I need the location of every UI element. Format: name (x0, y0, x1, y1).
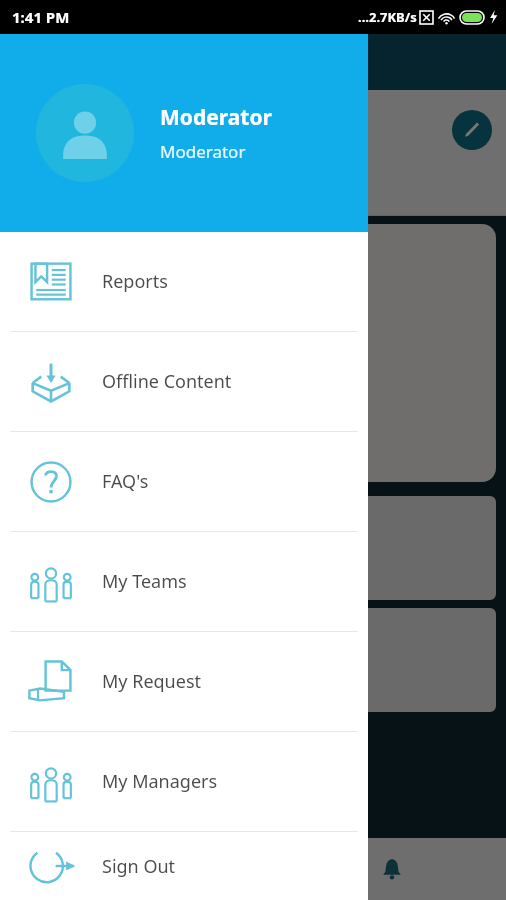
button[interactable]: Reports (0, 232, 368, 331)
button[interactable]: My Request (0, 632, 368, 731)
button[interactable]: Badges (10, 608, 496, 712)
staticText: My Managers (102, 769, 218, 794)
staticText: LLENGE (215, 382, 292, 409)
staticText: My Teams (102, 569, 187, 594)
staticText: Reports (102, 269, 168, 294)
button[interactable]: Offline Content (0, 332, 368, 431)
button[interactable]: Notifications (91, 845, 139, 893)
button[interactable]: Retailing Contest (10, 496, 496, 600)
staticText: My Request (102, 669, 201, 694)
button[interactable]: Notifications (368, 845, 416, 893)
staticText: Sign Out (102, 854, 176, 879)
staticText: Moderator (160, 103, 272, 132)
staticText: Moderator (160, 140, 246, 163)
button[interactable]: Sign Out (0, 832, 368, 900)
button[interactable]: Edit profile (452, 110, 492, 150)
button[interactable]: RS (10, 224, 496, 482)
staticText: 1:41 PM (12, 7, 70, 27)
staticText: ...2.7KB/s (358, 8, 417, 26)
button[interactable]: My Managers (0, 732, 368, 831)
staticText: Offline Content (102, 369, 232, 394)
button[interactable]: My Teams (0, 532, 368, 631)
staticText: FAQ's (102, 469, 149, 494)
button[interactable]: FAQ's (0, 432, 368, 531)
button[interactable]: Moderator (0, 34, 368, 232)
